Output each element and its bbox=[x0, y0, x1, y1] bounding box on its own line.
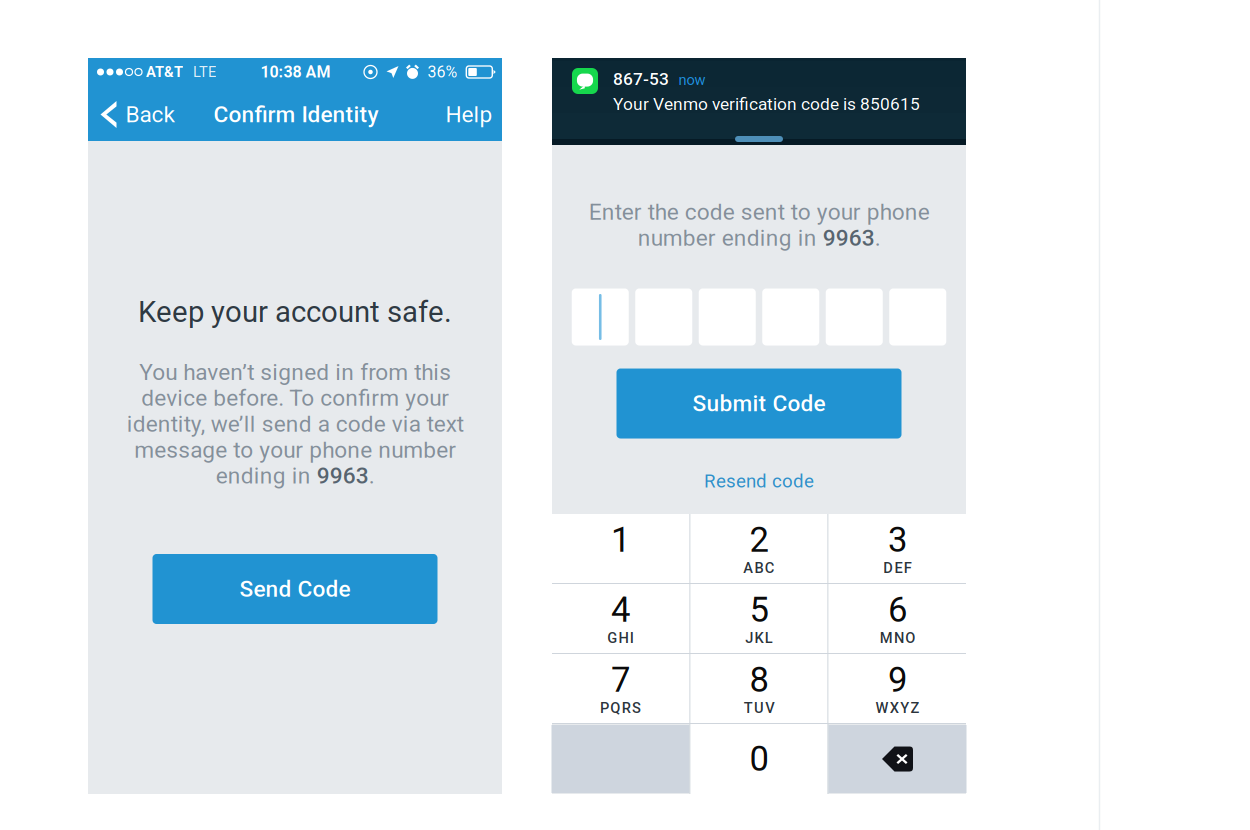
button[interactable]: Send Code bbox=[152, 554, 437, 624]
staticText: JKL bbox=[745, 629, 773, 647]
button[interactable]: 0 bbox=[690, 724, 827, 794]
button[interactable]: 7 bbox=[551, 654, 689, 723]
staticText: now bbox=[678, 71, 705, 89]
staticText: Your Venmo verification code is 850615 bbox=[613, 94, 920, 114]
staticText: Help bbox=[445, 101, 492, 128]
staticText: 0 bbox=[749, 739, 768, 779]
button[interactable]: Help bbox=[429, 88, 504, 141]
staticText: Confirm Identity bbox=[213, 101, 378, 128]
staticText: Resend code bbox=[704, 470, 814, 492]
staticText: 6 bbox=[888, 590, 907, 630]
button[interactable]: 1 bbox=[551, 514, 689, 583]
staticText: Send Code bbox=[239, 576, 350, 602]
button[interactable]: 9 bbox=[828, 654, 966, 723]
staticText: PQRS bbox=[600, 699, 641, 717]
staticText: 867-53 bbox=[613, 69, 669, 89]
staticText: GHI bbox=[607, 629, 634, 647]
button[interactable]: 3 bbox=[828, 514, 966, 583]
staticText: 3 bbox=[888, 520, 907, 560]
staticText: LTE bbox=[193, 63, 216, 81]
staticText: WXYZ bbox=[876, 699, 919, 717]
staticText: 8 bbox=[749, 660, 768, 700]
button[interactable]: 6 bbox=[828, 584, 966, 653]
staticText: MNO bbox=[880, 629, 915, 647]
staticText: 10:38 AM bbox=[260, 63, 330, 81]
staticText: Keep your account safe. bbox=[138, 295, 452, 329]
button[interactable]: Submit Code bbox=[616, 368, 901, 438]
staticText: Back bbox=[125, 101, 174, 128]
button[interactable]: 4 bbox=[551, 584, 689, 653]
staticText: Submit Code bbox=[692, 390, 825, 417]
staticText: You haven’t signed in from this device b… bbox=[126, 359, 463, 489]
button[interactable]: 2 bbox=[690, 514, 827, 583]
button[interactable]: 5 bbox=[690, 584, 827, 653]
staticText: 9 bbox=[888, 660, 907, 700]
staticText: DEF bbox=[883, 559, 912, 577]
button[interactable]: Delete bbox=[828, 725, 966, 793]
staticText: Enter the code sent to your phone number… bbox=[588, 199, 929, 251]
button[interactable]: Back bbox=[89, 88, 188, 141]
staticText: 36% bbox=[427, 63, 457, 81]
button[interactable]: Resend code bbox=[698, 464, 820, 498]
staticText: 4 bbox=[611, 590, 630, 630]
staticText: ABC bbox=[743, 559, 775, 577]
staticText: 5 bbox=[749, 590, 768, 630]
staticText: 7 bbox=[611, 660, 630, 700]
staticText: 2 bbox=[749, 520, 768, 560]
staticText: AT&T bbox=[146, 63, 183, 81]
staticText: 1 bbox=[611, 520, 630, 560]
button[interactable]: 8 bbox=[690, 654, 827, 723]
staticText: TUV bbox=[744, 699, 774, 717]
